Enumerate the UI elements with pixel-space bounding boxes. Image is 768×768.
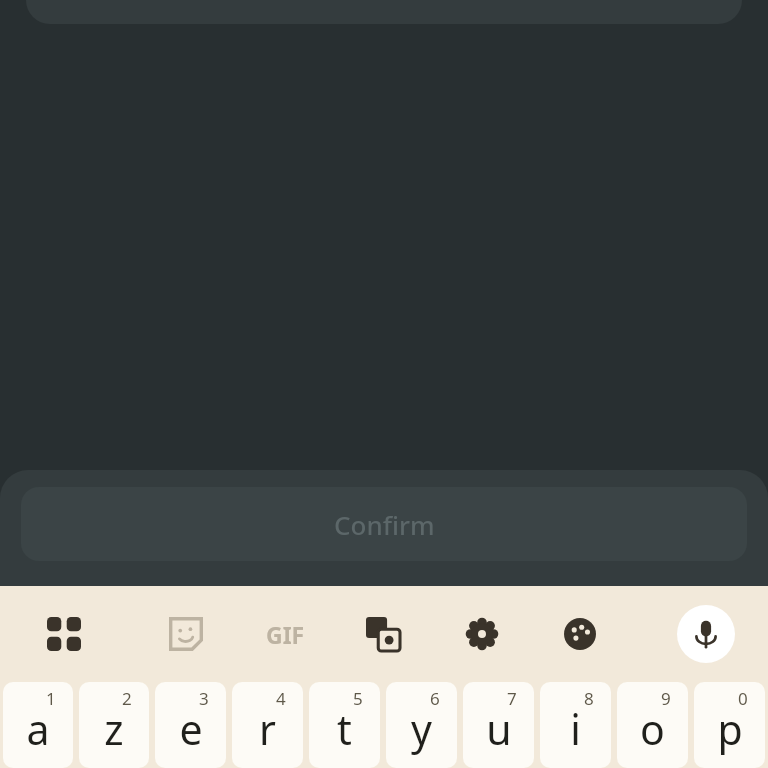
staticText: 2 [122,687,132,710]
staticText: 8 [584,687,594,710]
button[interactable]: 1 [3,682,73,768]
staticText: p [717,701,743,757]
button[interactable]: Settings [452,604,512,664]
staticText: 6 [430,687,440,710]
staticText: t [337,701,352,757]
staticText: a [26,701,50,757]
button[interactable]: Confirm [21,487,747,561]
staticText: r [259,701,276,757]
staticText: Confirm [334,507,435,542]
button[interactable]: 6 [386,682,457,768]
staticText: y [411,701,432,757]
button[interactable]: 9 [617,682,688,768]
staticText: e [179,701,203,757]
staticText: GIF [266,619,305,650]
staticText: i [570,701,581,757]
button[interactable]: GIF [255,604,315,664]
button[interactable]: 4 [232,682,303,768]
button[interactable]: 0 [694,682,765,768]
button[interactable]: Apps [34,604,94,664]
button[interactable]: 7 [463,682,534,768]
button[interactable]: 5 [309,682,380,768]
staticText: u [486,701,512,757]
button[interactable]: Translate [353,604,413,664]
staticText: 7 [507,687,517,710]
staticText: o [640,701,665,757]
staticText: 9 [661,687,671,710]
button[interactable]: 2 [79,682,149,768]
button[interactable]: Voice input [677,605,735,663]
staticText: z [104,701,124,757]
button[interactable]: Stickers [156,604,216,664]
button[interactable]: 3 [155,682,226,768]
staticText: 1 [46,687,56,710]
button[interactable]: Themes [550,604,610,664]
staticText: 5 [353,687,363,710]
staticText: 4 [276,687,286,710]
staticText: 0 [738,687,748,710]
button[interactable]: 8 [540,682,611,768]
staticText: 3 [199,687,209,710]
